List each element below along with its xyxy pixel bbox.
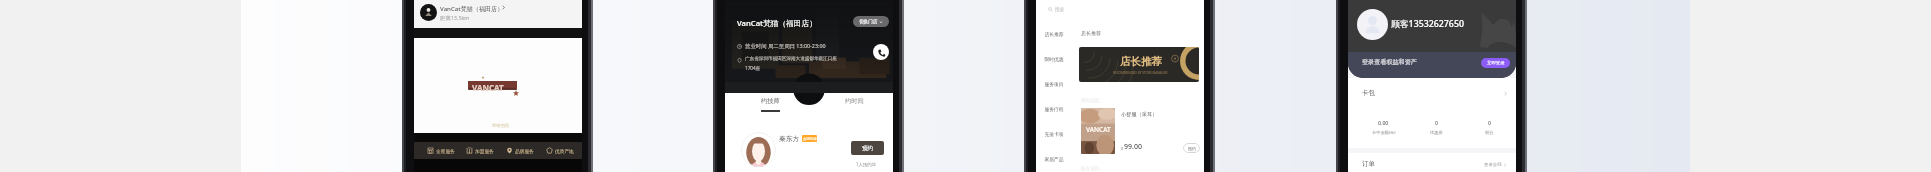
staticText: 优惠券 [1430,130,1443,135]
button[interactable]: 品牌服务 [500,142,540,159]
button[interactable]: 0 [1410,119,1463,135]
staticText: 距离13.5km [440,14,470,21]
staticText: 品牌服务 [515,148,534,154]
button[interactable]: 切换门店 [853,16,889,27]
staticText: 登录查看权益和资产 [1362,58,1417,66]
button[interactable]: 预约 [851,141,884,155]
button[interactable]: 服务项目 [1036,71,1072,96]
staticText: VanCat梵猫（福田店） [440,4,504,12]
staticText: RECOMMENDED BY STORE MANAGER [1113,71,1168,75]
button[interactable]: 限时优惠 [1036,46,1072,71]
staticText: 1人预约过 [856,161,877,167]
staticText: 预约 [862,145,874,152]
staticText: 卡包 [1362,89,1376,97]
staticText: 顾客13532627650 [1391,18,1464,30]
staticText: 搜索 [1055,7,1065,13]
button[interactable]: 优质产地 [540,142,580,159]
button[interactable]: 搜索 [1048,4,1118,15]
button[interactable]: 预约 [1183,143,1200,153]
button[interactable]: 0.00 [1357,119,1410,136]
staticText: 小舒服（采耳） [1121,111,1158,118]
button[interactable] [1079,105,1203,157]
button[interactable] [725,128,893,172]
staticText: 广东省深圳市福田区深南大道盛都华庭江口座 [745,56,837,62]
button[interactable] [414,1,509,26]
button[interactable]: 0 [1463,119,1516,135]
staticText: 1704座 [745,65,761,71]
staticText: 全屋服务 [436,148,455,154]
staticText: 服务项目 [1081,166,1100,172]
staticText: 预约 [1188,146,1196,151]
staticText: VANCAT [1086,125,1111,134]
staticText: 加盟服务 [475,148,494,154]
staticText: 家居产品 [1044,156,1064,162]
button[interactable]: 充值卡项 [1036,121,1072,146]
staticText: 金牌技师 [803,137,817,141]
staticText: 0 [1435,119,1438,126]
button[interactable]: 立即登录 [1481,58,1510,68]
staticText: 梵猫空间 [492,123,509,128]
staticText: ¥ [1121,146,1124,151]
staticText: 服务项目 [1044,81,1064,87]
staticText: 订单 [1362,160,1376,168]
button[interactable]: 约时间 [828,97,880,122]
staticText: 0 [1488,119,1491,126]
staticText: 切换门店 [859,19,878,25]
button[interactable]: 用户头像 [1357,9,1388,40]
staticText: 限时优惠 [1044,56,1064,62]
staticText: 限时优惠 [1081,98,1100,104]
staticText: 99.00 [1124,142,1142,152]
staticText: 立即登录 [1487,60,1505,66]
staticText: 优质产地 [555,148,574,154]
button[interactable]: 服务疗程 [1036,96,1072,121]
staticText: VANCAT [472,82,504,93]
button[interactable]: 加盟服务 [460,142,500,159]
staticText: 秦东方 [779,134,800,143]
staticText: 约时间 [845,97,864,105]
staticText: 0.00 [1378,119,1389,126]
staticText: 服务疗程 [1044,106,1064,112]
staticText: 店长推荐 [1081,30,1101,36]
staticText: 查看全部 [1484,162,1502,168]
staticText: 积分 [1485,130,1494,135]
staticText: 店长推荐 [1120,55,1162,68]
button[interactable]: 约技师 [744,97,796,122]
staticText: 卡中余额(元) [1372,130,1396,136]
staticText: 营业时间 周二至周日 13:00-23:00 [745,42,826,49]
button[interactable]: 全屋服务 [421,142,460,159]
button[interactable]: 拨打电话 [873,44,889,60]
button[interactable]: 店长推荐 [1079,47,1199,82]
button[interactable]: 家居产品 [1036,146,1072,171]
staticText: 充值卡项 [1044,131,1064,137]
button[interactable] [1348,78,1516,103]
button[interactable] [1348,153,1516,172]
staticText: 店长推荐 [1044,31,1064,37]
button[interactable]: 店长推荐 [1036,21,1072,46]
staticText: 约技师 [761,97,780,105]
staticText: VanCat梵猫（福田店） [737,18,817,29]
